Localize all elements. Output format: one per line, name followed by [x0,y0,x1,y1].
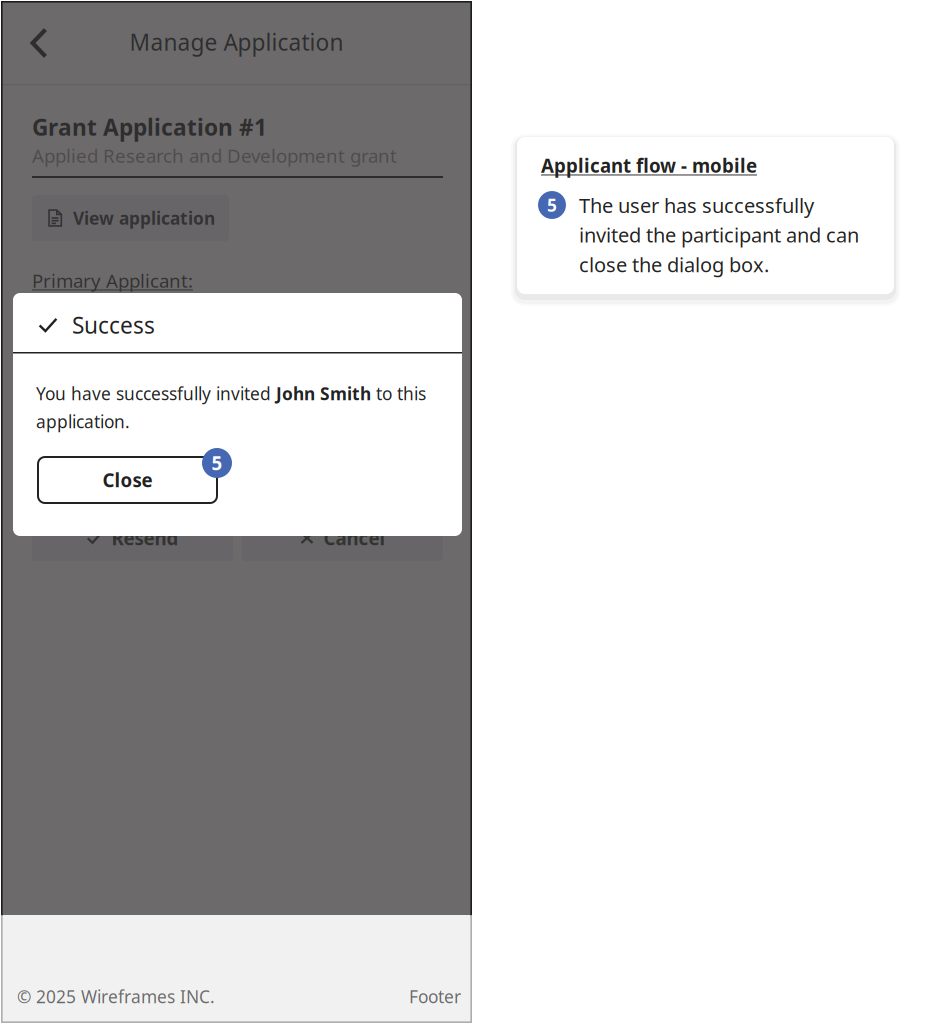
staticText: application. [36,410,130,433]
button[interactable]: Cancel [242,515,443,561]
button[interactable]: Close [38,457,217,503]
staticText: John Smith [276,382,371,405]
staticText: View application [73,206,215,229]
staticText: © 2025 Wireframes INC. [17,985,215,1008]
staticText: The user has successfully invited the pa… [579,192,859,278]
staticText: Grant Application #1 [32,112,267,142]
button[interactable]: Resend [32,515,233,561]
staticText: Applied Research and Development grant [32,143,397,168]
staticText: Close [102,468,152,492]
staticText: to this [371,382,426,405]
staticText: Primary Applicant: [32,268,193,293]
button[interactable]: Back [15,17,63,69]
staticText: Cancel [323,526,385,550]
staticText: You have successfully invited [36,382,276,405]
staticText: Manage Application [129,27,343,57]
button[interactable]: View application [32,195,229,241]
staticText: Footer [409,985,461,1008]
staticText: Applicant flow - mobile [541,153,757,178]
staticText: Resend [111,526,178,550]
staticText: 5 [547,193,557,216]
staticText: Success [72,310,155,340]
staticText: 5 [211,451,222,475]
